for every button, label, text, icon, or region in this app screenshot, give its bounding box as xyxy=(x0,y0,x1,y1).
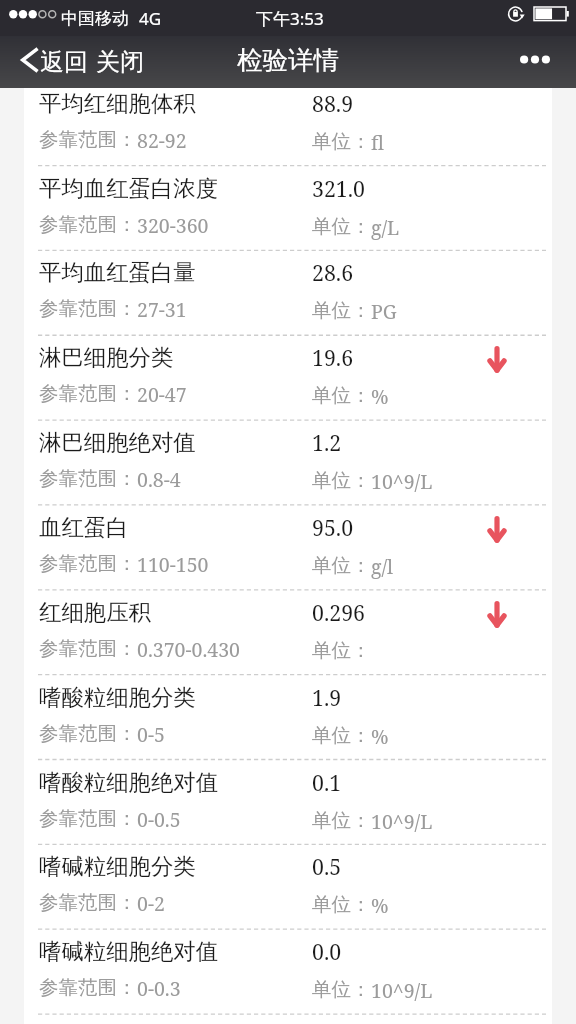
staticText: 中国移动 xyxy=(61,8,129,29)
staticText: 参靠范围： xyxy=(39,890,137,915)
staticText: 0.5 xyxy=(312,852,342,881)
button[interactable]: 平均红细胞体积 xyxy=(24,88,552,166)
staticText: 0-5 xyxy=(137,721,165,748)
button[interactable]: More options xyxy=(504,42,576,83)
staticText: 参靠范围： xyxy=(39,975,137,1000)
staticText: 检验详情 xyxy=(237,44,339,76)
staticText: 0-0.5 xyxy=(137,806,181,833)
staticText: 单位： xyxy=(312,808,371,833)
staticText: 单位： xyxy=(312,723,371,748)
staticText: 淋巴细胞绝对值 xyxy=(39,428,196,456)
staticText: 参靠范围： xyxy=(39,636,137,661)
button[interactable]: 平均血红蛋白量 xyxy=(24,250,552,335)
staticText: 嗜碱粒细胞绝对值 xyxy=(39,937,219,965)
staticText: 嗜酸粒细胞分类 xyxy=(39,683,196,711)
staticText: 红细胞压积 xyxy=(39,598,151,626)
staticText: 参靠范围： xyxy=(39,466,137,491)
staticText: 单位： xyxy=(312,129,371,154)
staticText: 平均红细胞体积 xyxy=(39,89,196,117)
staticText: 参靠范围： xyxy=(39,127,137,152)
button[interactable]: 血红蛋白 xyxy=(24,505,552,590)
staticText: 19.6 xyxy=(312,343,354,372)
staticText: 1.9 xyxy=(312,683,342,712)
button[interactable]: 关闭 xyxy=(88,37,152,87)
staticText: 10^9/L xyxy=(371,977,433,1004)
staticText: 95.0 xyxy=(312,513,354,542)
staticText: 10^9/L xyxy=(371,808,433,835)
staticText: 关闭 xyxy=(96,47,144,77)
staticText: 单位： xyxy=(312,977,371,1002)
staticText: 27-31 xyxy=(137,296,187,323)
staticText: fl xyxy=(371,129,384,156)
staticText: % xyxy=(371,892,389,919)
staticText: 单位： xyxy=(312,892,371,917)
staticText: 参靠范围： xyxy=(39,296,137,321)
staticText: 0.8-4 xyxy=(137,466,181,493)
staticText: 4G xyxy=(139,7,162,30)
staticText: 单位： xyxy=(312,553,371,578)
staticText: 参靠范围： xyxy=(39,551,137,576)
button[interactable]: 嗜碱粒细胞分类 xyxy=(24,844,552,929)
button[interactable]: 淋巴细胞分类 xyxy=(24,335,552,420)
staticText: 下午3:53 xyxy=(256,7,324,30)
button[interactable]: 返回 xyxy=(0,39,92,85)
staticText: 单位： xyxy=(312,383,371,408)
staticText: 82-92 xyxy=(137,127,187,154)
button[interactable]: 平均血红蛋白浓度 xyxy=(24,166,552,251)
staticText: 0.0 xyxy=(312,937,342,966)
staticText: 血红蛋白 xyxy=(39,513,129,541)
staticText: 平均血红蛋白浓度 xyxy=(39,174,219,202)
staticText: 单位： xyxy=(312,638,371,663)
staticText: 返回 xyxy=(40,47,88,77)
staticText: 单位： xyxy=(312,214,371,239)
button[interactable]: 红细胞压积 xyxy=(24,590,552,675)
button[interactable]: 淋巴细胞绝对值 xyxy=(24,420,552,505)
staticText: 参靠范围： xyxy=(39,721,137,746)
staticText: g/L xyxy=(371,214,400,241)
staticText: 1.2 xyxy=(312,428,342,457)
staticText: 平均血红蛋白量 xyxy=(39,258,196,286)
staticText: 321.0 xyxy=(312,174,365,203)
button[interactable]: 嗜酸粒细胞分类 xyxy=(24,675,552,760)
staticText: 淋巴细胞分类 xyxy=(39,343,174,371)
staticText: 嗜酸粒细胞绝对值 xyxy=(39,768,219,796)
staticText: 0-2 xyxy=(137,890,165,917)
staticText: 单位： xyxy=(312,468,371,493)
staticText: 320-360 xyxy=(137,212,209,239)
button[interactable]: 嗜碱粒细胞绝对值 xyxy=(24,929,552,1014)
staticText: 0.1 xyxy=(312,768,342,797)
button[interactable]: 嗜酸粒细胞绝对值 xyxy=(24,760,552,845)
staticText: 28.6 xyxy=(312,258,354,287)
staticText: 参靠范围： xyxy=(39,381,137,406)
staticText: PG xyxy=(371,298,397,325)
staticText: 88.9 xyxy=(312,89,354,118)
staticText: % xyxy=(371,723,389,750)
staticText: % xyxy=(371,383,389,410)
staticText: 0.370-0.430 xyxy=(137,636,240,663)
staticText: 110-150 xyxy=(137,551,209,578)
staticText: 参靠范围： xyxy=(39,806,137,831)
staticText: 0.296 xyxy=(312,598,365,627)
staticText: 20-47 xyxy=(137,381,187,408)
staticText: 10^9/L xyxy=(371,468,433,495)
staticText: 0-0.3 xyxy=(137,975,181,1002)
staticText: 单位： xyxy=(312,298,371,323)
staticText: 参靠范围： xyxy=(39,212,137,237)
staticText: g/l xyxy=(371,553,394,580)
staticText: 嗜碱粒细胞分类 xyxy=(39,852,196,880)
